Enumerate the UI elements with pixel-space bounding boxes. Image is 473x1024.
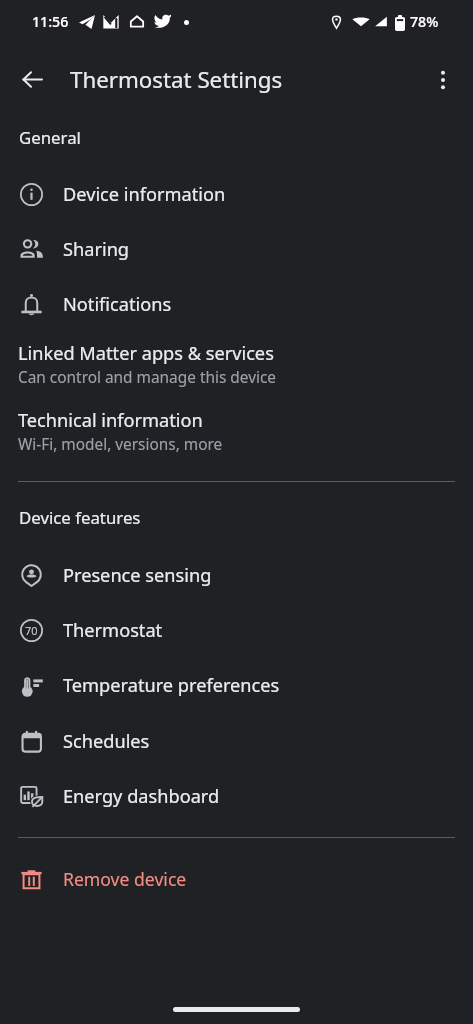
staticText: Device features (19, 506, 141, 529)
staticText: Notifications (63, 292, 172, 317)
staticText: Temperature preferences (63, 673, 280, 698)
staticText: Schedules (63, 729, 150, 754)
button[interactable]: More options (422, 59, 463, 100)
button[interactable]: Sharing (0, 222, 473, 276)
button[interactable]: Notifications (0, 277, 473, 331)
button[interactable]: Remove device (0, 852, 473, 906)
button[interactable]: Device information (0, 167, 473, 221)
staticText: Remove device (63, 867, 187, 891)
button[interactable]: Temperature preferences (0, 658, 473, 712)
staticText: 78% (410, 12, 439, 31)
button[interactable]: Linked Matter apps & services (0, 334, 473, 394)
button[interactable]: 70 (0, 603, 473, 657)
staticText: Can control and manage this device (18, 367, 277, 388)
staticText: Sharing (63, 237, 130, 262)
staticText: Technical information (18, 408, 203, 433)
staticText: Device information (63, 182, 226, 207)
button[interactable]: Energy dashboard (0, 769, 473, 823)
staticText: General (19, 126, 81, 149)
staticText: Presence sensing (63, 563, 212, 588)
staticText: 70 (25, 623, 38, 638)
staticText: Thermostat (63, 618, 163, 643)
button[interactable]: Back (12, 59, 53, 100)
staticText: Linked Matter apps & services (18, 341, 274, 366)
staticText: Energy dashboard (63, 784, 220, 809)
button[interactable]: Technical information (0, 401, 473, 461)
staticText: Wi-Fi, model, versions, more (18, 434, 223, 455)
button[interactable]: Schedules (0, 714, 473, 768)
staticText: 11:56 (32, 12, 69, 31)
staticText: Thermostat Settings (70, 64, 283, 94)
button[interactable]: Presence sensing (0, 548, 473, 602)
